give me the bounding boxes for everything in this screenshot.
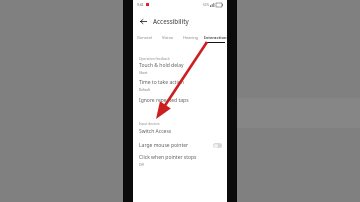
staticText: General (137, 35, 152, 40)
button[interactable]: Click when pointer stops (133, 152, 227, 169)
staticText: Click when pointer stops (139, 154, 197, 161)
staticText: Time to take action (139, 79, 184, 86)
button[interactable]: Large mouse pointer (133, 138, 227, 152)
staticText: Operation feedback (139, 56, 170, 60)
staticText: Interaction (204, 35, 227, 40)
staticText: Input devices (139, 121, 160, 125)
staticText: Ignore repeated taps (139, 97, 189, 104)
button[interactable]: Vision (156, 31, 179, 43)
staticText: Hearing (183, 35, 199, 40)
button[interactable]: Interaction (203, 31, 227, 43)
button[interactable]: Ignore repeated taps (133, 94, 227, 107)
staticText: Large mouse pointer (139, 142, 189, 149)
staticText: Touch & hold delay (139, 62, 184, 69)
button[interactable]: Touch & hold delay (133, 60, 227, 77)
staticText: Default (139, 88, 150, 92)
staticText: 9:42 (137, 3, 144, 7)
button[interactable]: General (133, 31, 156, 43)
staticText: Short (139, 71, 148, 75)
staticText: Switch Access (139, 128, 172, 135)
staticText: 52% (203, 3, 209, 7)
button[interactable]: Back (138, 16, 149, 27)
staticText: Vision (162, 35, 174, 40)
staticText: Accessibility (153, 17, 189, 25)
button[interactable]: Time to take action (133, 77, 227, 94)
button[interactable]: Switch Access (133, 125, 227, 138)
button[interactable]: Hearing (179, 31, 203, 43)
staticText: Off (139, 163, 144, 167)
